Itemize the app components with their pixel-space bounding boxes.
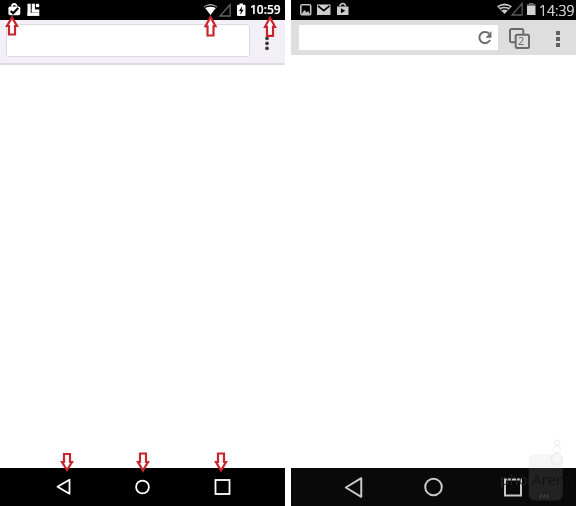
button[interactable]: More options [259,33,275,55]
staticText: 10:59 [250,1,281,17]
button[interactable]: More options [549,26,567,50]
staticText: phone [500,469,546,489]
button[interactable] [299,25,498,50]
staticText: 2 [518,33,525,48]
button[interactable]: Tabs: 2 [506,24,532,50]
staticText: 14:39 [539,1,575,20]
staticText: Arena [532,469,574,489]
button[interactable] [6,24,250,57]
